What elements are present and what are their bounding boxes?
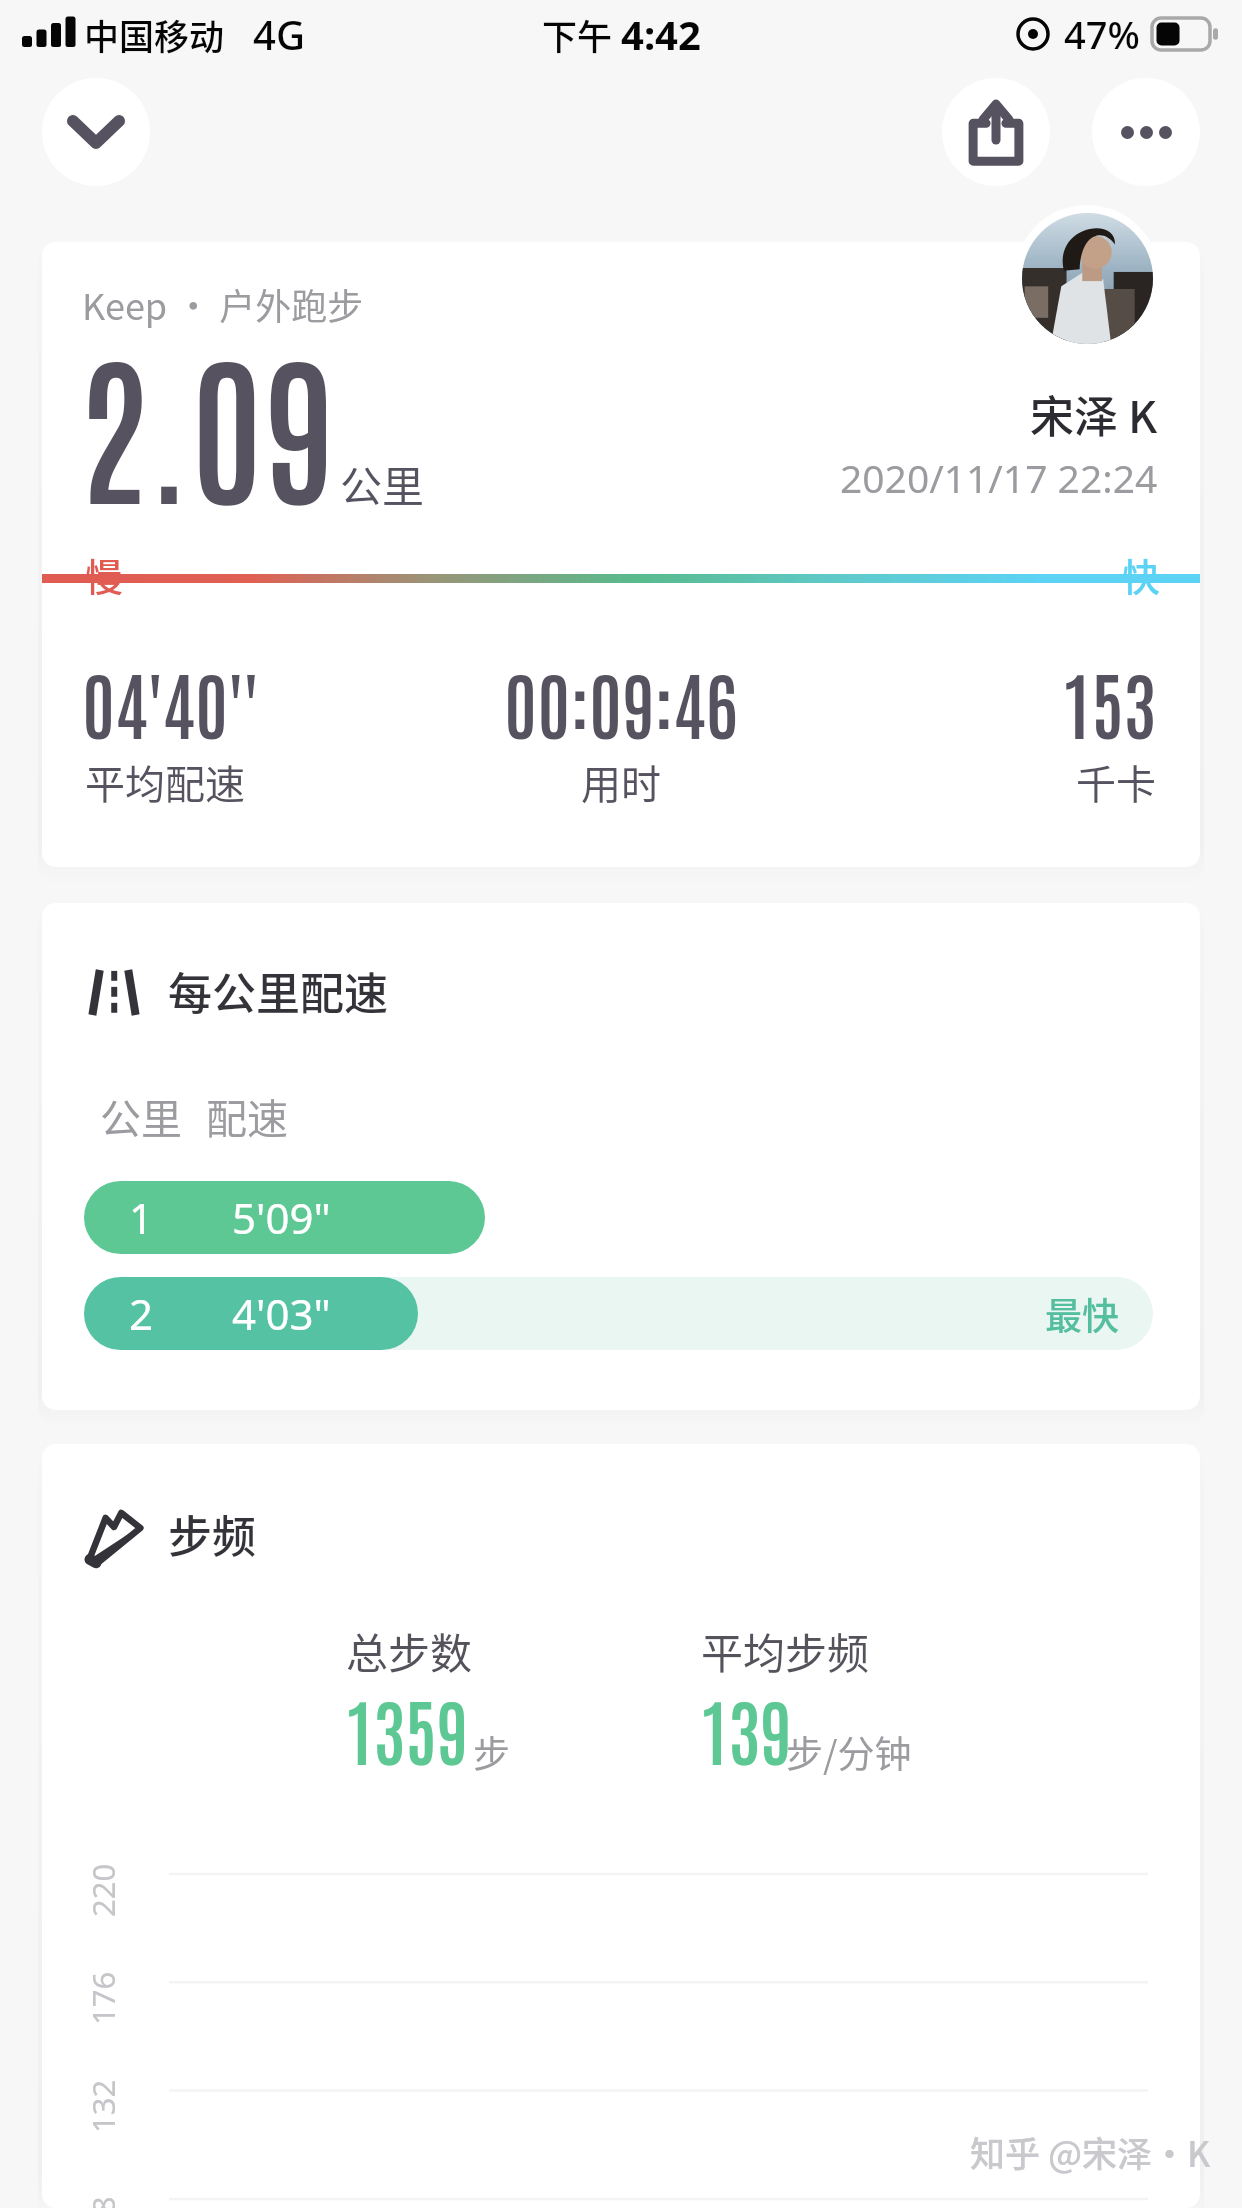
staticText: 88: [82, 2196, 124, 2208]
staticText: 4G: [253, 7, 305, 61]
staticText: 宋泽 K: [1030, 382, 1158, 446]
staticText: 千卡: [1076, 753, 1156, 811]
staticText: 每公里配速: [168, 959, 388, 1023]
staticText: 最快: [1045, 1287, 1119, 1341]
staticText: 04'40'': [82, 654, 259, 750]
staticText: 中国移动: [84, 9, 225, 60]
staticText: 快: [1122, 547, 1161, 602]
staticText: 步: [473, 1725, 510, 1779]
staticText: 知乎 @宋泽·K: [970, 2126, 1211, 2177]
staticText: 2020/11/17 22:24: [840, 451, 1158, 504]
staticText: 2: [129, 1285, 154, 1342]
staticText: 00:09:46: [504, 654, 738, 750]
staticText: 4'03": [232, 1285, 331, 1342]
staticText: 下午: [542, 9, 613, 60]
staticText: Keep · 户外跑步: [82, 278, 364, 330]
button[interactable]: 每公里配速: [42, 903, 1200, 1410]
button[interactable]: Share: [942, 78, 1050, 186]
staticText: 5'09": [232, 1189, 331, 1246]
staticText: 慢: [85, 547, 124, 602]
staticText: 总步数: [346, 1620, 473, 1681]
staticText: 220: [82, 1863, 124, 1917]
staticText: 1: [129, 1189, 154, 1246]
button[interactable]: Keep · 户外跑步: [42, 242, 1200, 867]
staticText: 公里: [100, 1086, 182, 1145]
staticText: 平均步频: [701, 1620, 870, 1681]
button[interactable]: User profile photo: [1014, 205, 1160, 351]
button[interactable]: More options: [1092, 78, 1200, 186]
staticText: 步频: [168, 1502, 256, 1566]
staticText: 139: [701, 1682, 792, 1775]
staticText: 用时: [581, 753, 661, 811]
staticText: 132: [82, 2079, 124, 2133]
staticText: 4:42: [621, 7, 701, 61]
staticText: 步/分钟: [786, 1725, 912, 1779]
button[interactable]: 步频: [42, 1444, 1200, 2208]
staticText: 1359: [346, 1682, 468, 1775]
staticText: 配速: [206, 1086, 288, 1145]
staticText: 47%: [1064, 8, 1140, 60]
staticText: 公里: [340, 453, 425, 514]
button[interactable]: Collapse: [42, 78, 150, 186]
staticText: 2.09: [77, 316, 335, 527]
staticText: 153: [1063, 654, 1156, 750]
staticText: 176: [82, 1971, 124, 2025]
staticText: 平均配速: [85, 753, 245, 811]
